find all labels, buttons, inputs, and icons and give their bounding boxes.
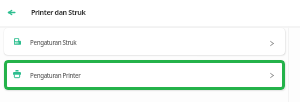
staticText: Pengaturan Printer bbox=[30, 71, 81, 79]
button[interactable]: Pengaturan Printer bbox=[4, 60, 285, 90]
button[interactable]: Back bbox=[3, 4, 19, 20]
staticText: Printer dan Struk bbox=[31, 7, 86, 17]
staticText: Pengaturan Struk bbox=[30, 38, 77, 46]
button[interactable]: Pengaturan Struk bbox=[4, 28, 285, 55]
